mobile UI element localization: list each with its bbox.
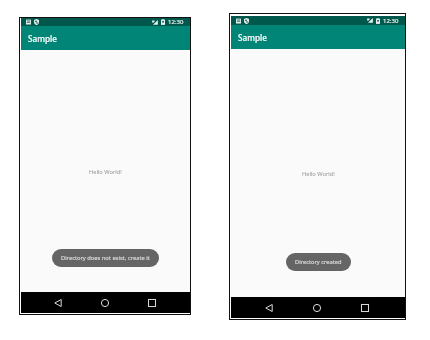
- button[interactable]: Recent apps: [144, 295, 159, 310]
- staticText: 12:30: [168, 18, 184, 26]
- staticText: Directory does not exist, create it: [61, 254, 150, 262]
- staticText: 12:30: [383, 17, 399, 25]
- staticText: Directory created: [295, 258, 342, 266]
- button[interactable]: Recent apps: [357, 300, 372, 315]
- button[interactable]: Back: [50, 295, 65, 310]
- button[interactable]: Home: [309, 300, 324, 315]
- button[interactable]: Directory created: [286, 253, 351, 271]
- button[interactable]: Back: [261, 300, 276, 315]
- button[interactable]: Home: [97, 295, 112, 310]
- staticText: Sample: [238, 32, 267, 43]
- button[interactable]: Directory does not exist, create it: [52, 249, 159, 267]
- staticText: Hello World!: [89, 168, 122, 176]
- staticText: Hello World!: [302, 170, 335, 178]
- staticText: Sample: [28, 33, 57, 44]
